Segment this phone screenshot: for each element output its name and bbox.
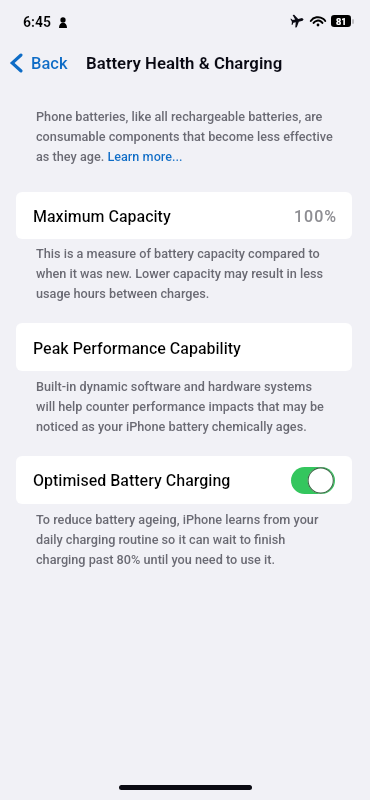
staticText: To reduce battery ageing, iPhone learns … — [36, 512, 334, 567]
staticText: This is a measure of battery capacity co… — [36, 246, 334, 301]
staticText: Built-in dynamic software and hardware s… — [36, 379, 334, 434]
staticText: Battery Health & Charging — [86, 53, 283, 73]
button[interactable]: Optimised Battery Charging toggle — [291, 467, 335, 494]
staticText: 6:45 — [23, 14, 52, 30]
staticText: Phone batteries, like all rechargeable b… — [36, 109, 334, 164]
staticText: Maximum Capacity — [33, 207, 171, 226]
staticText: Peak Performance Capability — [33, 339, 241, 358]
staticText: Back — [31, 54, 68, 73]
button[interactable]: Back — [5, 48, 74, 78]
staticText: 81 — [336, 16, 347, 27]
staticText: Optimised Battery Charging — [33, 471, 231, 490]
staticText: 100% — [294, 207, 338, 226]
